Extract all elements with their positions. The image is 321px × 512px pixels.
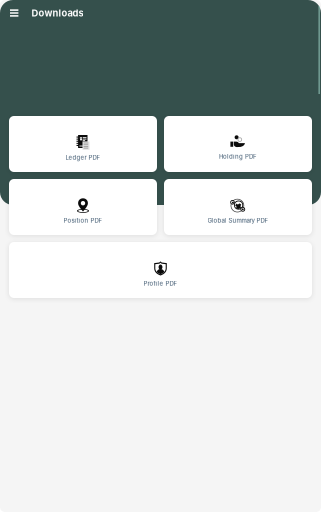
button[interactable]: Ledger PDF bbox=[9, 116, 157, 172]
staticText: Downloads bbox=[31, 7, 83, 19]
button[interactable]: Menu bbox=[0, 2, 31, 24]
button[interactable]: Global Summary PDF bbox=[164, 179, 312, 235]
staticText: Profile PDF bbox=[143, 280, 177, 287]
staticText: Global Summary PDF bbox=[207, 217, 268, 224]
staticText: Holding PDF bbox=[219, 153, 257, 160]
button[interactable]: Holding PDF bbox=[164, 116, 312, 172]
button[interactable]: Profile PDF bbox=[9, 242, 312, 298]
staticText: Position PDF bbox=[63, 217, 102, 224]
button[interactable]: Position PDF bbox=[9, 179, 157, 235]
staticText: Ledger PDF bbox=[65, 154, 100, 161]
